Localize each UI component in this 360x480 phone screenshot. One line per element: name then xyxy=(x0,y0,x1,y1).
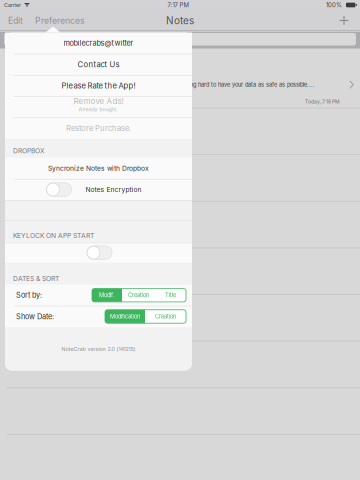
button[interactable]: Modif. xyxy=(92,288,122,302)
staticText: Notes xyxy=(166,14,194,27)
staticText: Title xyxy=(165,292,176,299)
staticText: Show Date: xyxy=(16,312,54,321)
staticText: Please Rate the App! xyxy=(61,81,135,90)
button[interactable]: Preferences xyxy=(32,10,88,31)
staticText: mobilecrabs@twitter xyxy=(63,39,133,48)
staticText: Modification xyxy=(110,313,140,320)
button[interactable]: Please Rate the App! xyxy=(5,75,192,96)
staticText: Contact Us xyxy=(77,60,119,69)
staticText: Sort by: xyxy=(16,291,42,300)
staticText: We are trying hard to have your data as … xyxy=(162,81,315,88)
button[interactable]: Restore Purchase. xyxy=(5,117,192,139)
staticText: Today, 7:16 PM xyxy=(305,99,340,105)
staticText: Edit xyxy=(8,15,23,26)
staticText: Restore Purchase. xyxy=(66,123,131,133)
button[interactable]: Creation xyxy=(145,310,186,323)
staticText: Carrier xyxy=(4,2,21,8)
button[interactable]: Edit xyxy=(5,10,26,31)
staticText: DROPBOX xyxy=(13,147,45,155)
staticText: Syncronize Notes with Dropbox xyxy=(48,164,149,172)
staticText: 100% xyxy=(326,1,342,9)
staticText: Remove Ads! xyxy=(73,96,123,106)
button[interactable]: mobilecrabs@twitter xyxy=(5,32,192,54)
staticText: Notes Encryption xyxy=(85,185,141,194)
staticText: Modif. xyxy=(99,292,115,299)
staticText: 7:17 PM xyxy=(167,1,188,9)
staticText: NoteCrab version 2.0 (141215) xyxy=(61,346,135,352)
button[interactable]: Creation xyxy=(122,288,155,302)
button[interactable]: Contact Us xyxy=(5,54,192,75)
staticText: Creation xyxy=(155,313,176,320)
button[interactable]: Syncronize Notes with Dropbox xyxy=(5,158,192,179)
staticText: Already bought. xyxy=(78,106,118,112)
button[interactable]: Keylock on app start xyxy=(5,243,192,263)
button[interactable]: Remove Ads! xyxy=(5,96,192,117)
button[interactable]: Title xyxy=(155,288,186,302)
staticText: DATES & SORT xyxy=(13,275,59,283)
staticText: Creation xyxy=(128,292,149,299)
button[interactable]: Modification xyxy=(105,310,145,323)
staticText: Preferences xyxy=(35,15,85,26)
button[interactable]: New note xyxy=(333,10,355,31)
button[interactable]: Notes Encryption xyxy=(5,179,192,200)
staticText: KEYLOCK ON APP START xyxy=(13,232,94,240)
